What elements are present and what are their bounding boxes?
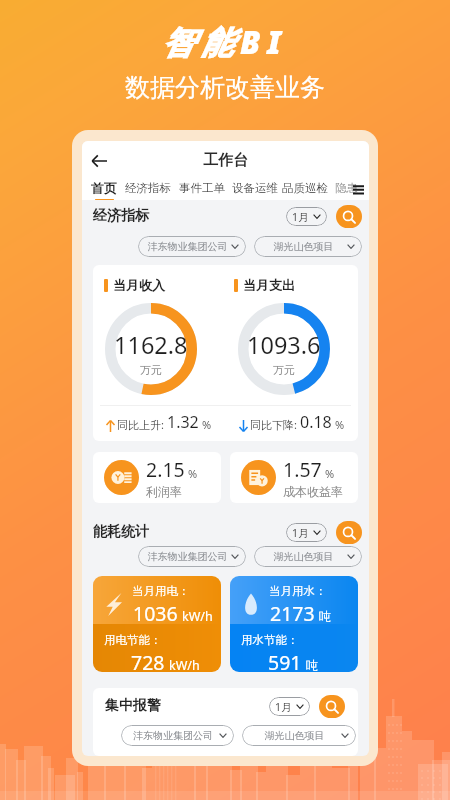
button[interactable]: 1月 (269, 697, 310, 716)
staticText: 同比上升: (117, 417, 164, 432)
staticText: 1093.6 (247, 329, 321, 361)
button[interactable]: 沣东物业集团公司 (138, 546, 246, 567)
button[interactable]: 经济指标 (125, 181, 171, 195)
staticText: 1162.8 (114, 329, 188, 361)
button[interactable]: 隐患 (335, 181, 358, 195)
staticText: % (188, 466, 198, 481)
staticText: 首页 (91, 180, 117, 196)
staticText: 1.57 (283, 456, 322, 483)
staticText: 湖光山色项目 (248, 729, 341, 742)
button[interactable]: 品质巡检 (282, 181, 328, 195)
staticText: 当月用电： (132, 584, 190, 598)
staticText: 利润率 (146, 484, 182, 499)
staticText: 沣东物业集团公司 (144, 550, 231, 563)
button[interactable]: 1.57 (230, 452, 358, 503)
staticText: % (335, 417, 345, 432)
staticText: 0.18 (300, 411, 332, 433)
button[interactable]: 当月用电： (93, 576, 221, 672)
staticText: 1月 (292, 526, 309, 540)
staticText: 工作台 (203, 151, 248, 170)
button[interactable]: 湖光山色项目 (254, 546, 362, 567)
staticText: 万元 (140, 363, 162, 377)
button[interactable]: Search (336, 521, 362, 544)
staticText: 1月 (292, 210, 309, 224)
staticText: 1036 (133, 600, 178, 627)
button[interactable]: 沣东物业集团公司 (121, 725, 234, 746)
staticText: 2.15 (146, 456, 185, 483)
staticText: % (202, 417, 212, 432)
button[interactable]: 1月 (286, 523, 327, 542)
staticText: 沣东物业集团公司 (127, 729, 219, 742)
staticText: 591 (268, 649, 302, 672)
staticText: 2173 (270, 600, 315, 627)
staticText: kW/h (182, 608, 213, 625)
staticText: 吨 (306, 658, 319, 672)
button[interactable]: 湖光山色项目 (242, 725, 356, 746)
staticText: 集中报警 (105, 697, 161, 715)
staticText: % (325, 466, 335, 481)
staticText: 1月 (275, 700, 292, 714)
staticText: 1.32 (167, 411, 199, 433)
staticText: 湖光山色项目 (260, 240, 347, 253)
button[interactable]: 事件工单 (179, 181, 225, 195)
button[interactable]: 湖光山色项目 (254, 236, 362, 257)
button[interactable]: Search (336, 205, 362, 228)
staticText: 当月收入 (113, 277, 165, 293)
staticText: 当月支出 (243, 277, 295, 293)
button[interactable]: More tabs (351, 180, 365, 198)
staticText: 当月用水： (269, 584, 327, 598)
staticText: 万元 (273, 363, 295, 377)
staticText: 同比下降: (250, 417, 297, 432)
button[interactable]: Search (319, 695, 345, 718)
staticText: 湖光山色项目 (260, 550, 347, 563)
button[interactable]: 首页 (91, 180, 117, 200)
staticText: 智能BI (162, 20, 288, 64)
button[interactable]: 当月用水： (230, 576, 358, 672)
staticText: 吨 (319, 609, 332, 625)
staticText: 数据分析改善业务 (125, 72, 325, 103)
button[interactable]: Back (86, 148, 112, 174)
staticText: kW/h (169, 657, 200, 672)
button[interactable]: 沣东物业集团公司 (138, 236, 246, 257)
staticText: 沣东物业集团公司 (144, 240, 231, 253)
button[interactable]: 2.15 (93, 452, 221, 503)
staticText: 经济指标 (93, 207, 149, 225)
staticText: 用电节能： (104, 633, 162, 647)
staticText: 用水节能： (241, 633, 299, 647)
button[interactable]: 1月 (286, 207, 327, 226)
button[interactable]: 设备运维 (232, 181, 278, 195)
staticText: 能耗统计 (93, 523, 149, 541)
staticText: 728 (131, 649, 165, 672)
staticText: 成本收益率 (283, 484, 343, 499)
